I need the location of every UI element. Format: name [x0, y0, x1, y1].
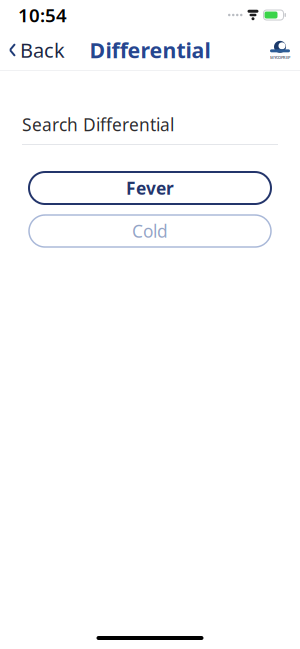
- staticText: MYCOPREP: [270, 55, 290, 60]
- staticText: 10:54: [18, 3, 67, 27]
- button[interactable]: Cold: [29, 215, 271, 247]
- staticText: Search Differential: [22, 113, 174, 136]
- button[interactable]: Back: [0, 31, 65, 69]
- button[interactable]: MyCoPrep home: [268, 36, 300, 64]
- staticText: Fever: [126, 176, 174, 199]
- button[interactable]: Fever: [29, 172, 271, 204]
- staticText: Differential: [89, 36, 210, 64]
- staticText: Cold: [132, 219, 168, 242]
- staticText: Back: [20, 37, 65, 63]
